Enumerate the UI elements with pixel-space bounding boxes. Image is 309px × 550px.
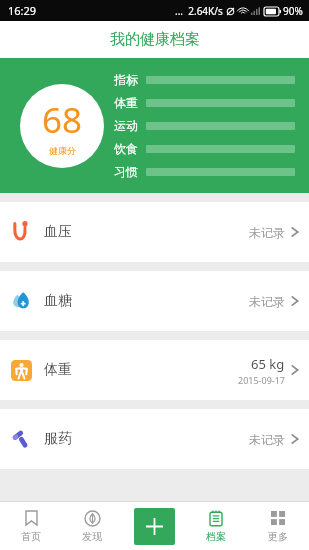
staticText: 血糖 (44, 292, 72, 310)
staticText: 65 kg (251, 355, 285, 373)
button[interactable]: 血压 (0, 202, 309, 262)
staticText: 未记录 (249, 432, 285, 447)
staticText: 档案 (206, 530, 226, 543)
staticText: 90% (283, 4, 303, 18)
staticText: 我的健康档案 (110, 30, 200, 49)
button[interactable]: 首页 (0, 502, 61, 550)
staticText: 首页 (21, 530, 41, 543)
button[interactable]: 服药 (0, 409, 309, 469)
staticText: 体重 (114, 95, 138, 110)
staticText: 指标 (114, 72, 138, 87)
staticText: ... 2.64K/s (175, 4, 223, 18)
staticText: 未记录 (249, 225, 285, 240)
button[interactable]: 体重 (0, 340, 309, 400)
staticText: 运动 (114, 118, 138, 133)
button[interactable]: 档案 (185, 502, 247, 550)
staticText: 血压 (44, 223, 72, 241)
staticText: 未记录 (249, 294, 285, 309)
staticText: 健康分 (49, 145, 76, 156)
staticText: 68 (42, 96, 83, 144)
staticText: 更多 (268, 530, 288, 543)
staticText: 16:29 (8, 3, 37, 18)
staticText: 饮食 (114, 141, 138, 156)
staticText: 体重 (44, 361, 72, 379)
button[interactable]: 发现 (61, 502, 123, 550)
staticText: 发现 (82, 530, 102, 543)
button[interactable]: 血糖 (0, 271, 309, 331)
staticText: 服药 (44, 430, 72, 448)
button[interactable]: 更多 (247, 502, 309, 550)
staticText: 2015-09-17 (238, 374, 285, 386)
staticText: 习惯 (114, 164, 138, 179)
button[interactable]: Add record (134, 508, 175, 545)
